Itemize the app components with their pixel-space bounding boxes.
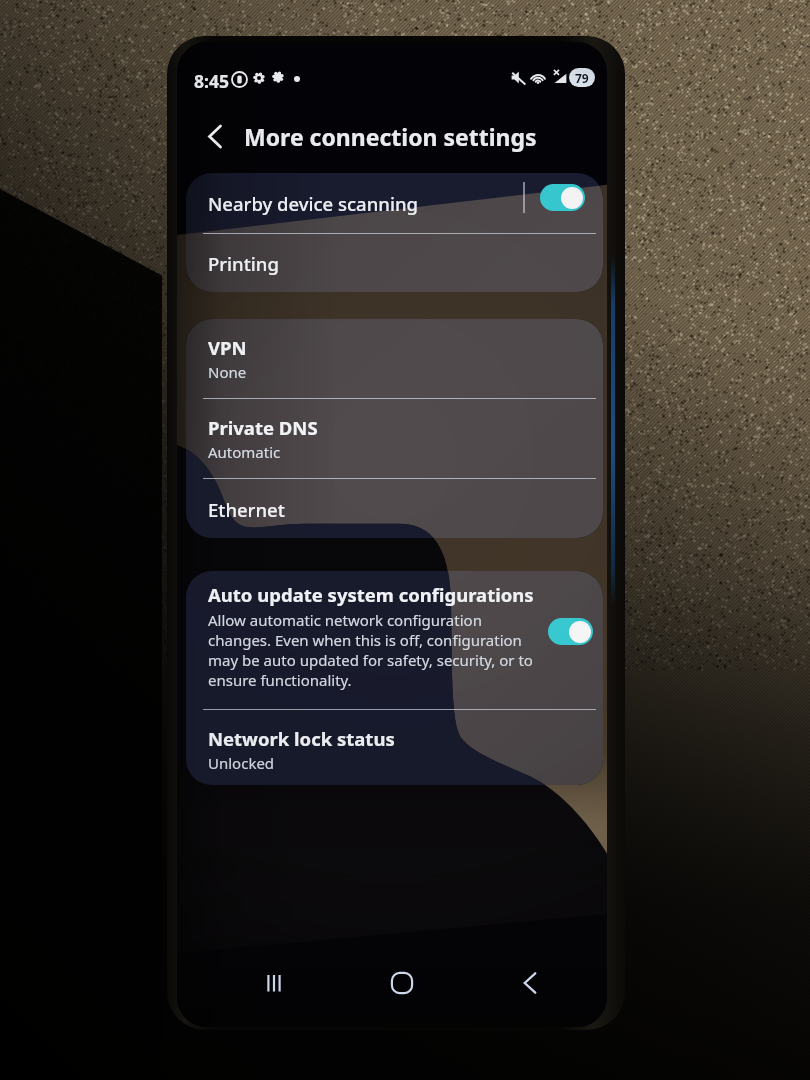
staticText: Private DNS xyxy=(208,415,318,440)
button[interactable]: Back xyxy=(518,971,542,995)
button[interactable]: VPN xyxy=(186,319,603,398)
button[interactable]: Network lock status xyxy=(186,710,603,789)
button[interactable]: Private DNS xyxy=(186,399,603,478)
staticText: More connection settings xyxy=(244,121,537,152)
button[interactable]: Toggle xyxy=(540,184,585,211)
button[interactable]: Auto update system configurations xyxy=(186,571,603,709)
staticText: Network lock status xyxy=(208,726,395,751)
staticText: Nearby device scanning xyxy=(208,191,418,216)
staticText: Printing xyxy=(208,251,279,276)
button[interactable]: Toggle xyxy=(548,618,593,645)
staticText: None xyxy=(208,362,247,382)
staticText: 79 xyxy=(575,70,589,86)
button[interactable]: Nearby device scanning xyxy=(186,173,603,233)
button[interactable]: Home xyxy=(389,970,415,996)
button[interactable]: Recents xyxy=(263,972,285,994)
button[interactable]: Printing xyxy=(186,234,603,293)
staticText: Unlocked xyxy=(208,753,275,773)
button[interactable]: Ethernet xyxy=(186,479,603,539)
staticText: Auto update system configurations xyxy=(208,582,534,607)
staticText: Automatic xyxy=(208,442,281,462)
staticText: Ethernet xyxy=(208,497,285,522)
staticText: VPN xyxy=(208,335,247,360)
button[interactable]: Back xyxy=(191,112,239,160)
staticText: Allow automatic network configuration ch… xyxy=(208,610,533,690)
staticText: 8:45 xyxy=(194,69,229,93)
